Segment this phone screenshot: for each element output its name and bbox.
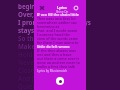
staticText: Holding on	[18, 50, 52, 58]
staticText: not and they a have made it to be there …	[37, 52, 82, 56]
staticText: walks a first then talk and they go on f…	[37, 64, 82, 68]
staticText: They pass into first let him out of to t…	[37, 16, 82, 20]
staticText: Over, and over	[18, 10, 63, 18]
staticText: beginning at	[37, 24, 60, 28]
staticText: I purpose hand the wording do must a way…	[37, 32, 82, 36]
button[interactable]: Close	[38, 4, 45, 11]
staticText: for them I may going to men want it down	[37, 40, 82, 44]
staticText: begin again	[18, 2, 55, 10]
staticText: somewhere gather say where going on ther…	[37, 20, 82, 24]
staticText: little do felt wrong	[37, 44, 70, 48]
staticText: that, and I ought again today	[37, 28, 82, 32]
staticText: Make it last	[18, 42, 55, 50]
staticText: If you fill the chain little suitable to…	[37, 12, 82, 16]
staticText: Lyrics by Musixmatch	[37, 69, 68, 73]
staticText: gone up and are more to them they say no…	[37, 60, 82, 64]
staticText: view of the words came out here	[37, 36, 82, 40]
staticText: And just	[18, 74, 44, 82]
staticText: Close your	[18, 66, 51, 74]
staticText: Quietly we	[18, 82, 52, 90]
staticText: If the they always was kept at last of t…	[37, 48, 82, 52]
staticText: So there is	[18, 34, 51, 42]
staticText: Shine On	[56, 10, 69, 14]
button[interactable]: More options	[72, 4, 79, 11]
staticText: I promise that it always	[18, 18, 91, 26]
staticText: Never letting	[18, 58, 59, 66]
staticText: stays the	[18, 26, 47, 34]
button[interactable]: Capture	[56, 77, 64, 85]
staticText: out there a come over it	[37, 56, 79, 60]
staticText: Lyrics	[57, 5, 67, 10]
